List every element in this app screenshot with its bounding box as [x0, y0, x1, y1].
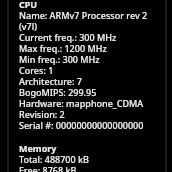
staticText: Architecture: 7 [19, 75, 82, 87]
staticText: Serial #: 00000000000000000 [19, 119, 144, 131]
staticText: Memory [19, 142, 57, 154]
staticText: Free: 8768 kB [19, 164, 77, 172]
staticText: Min freq.: 300 MHz [19, 53, 100, 65]
staticText: Revision: 2 [19, 108, 65, 120]
staticText: Name: ARMv7 Processor rev 2 [19, 9, 148, 21]
staticText: (v7l) [19, 20, 37, 32]
staticText: Max freq.: 1200 MHz [19, 42, 107, 54]
staticText: Hardware: mapphone_CDMA [19, 97, 144, 109]
staticText: Current freq.: 300 MHz [19, 31, 117, 43]
staticText: Total: 488700 kB [19, 153, 89, 165]
staticText: Cores: 1 [19, 64, 54, 76]
staticText: CPU [19, 0, 38, 10]
staticText: BogoMIPS: 299.95 [19, 86, 97, 98]
